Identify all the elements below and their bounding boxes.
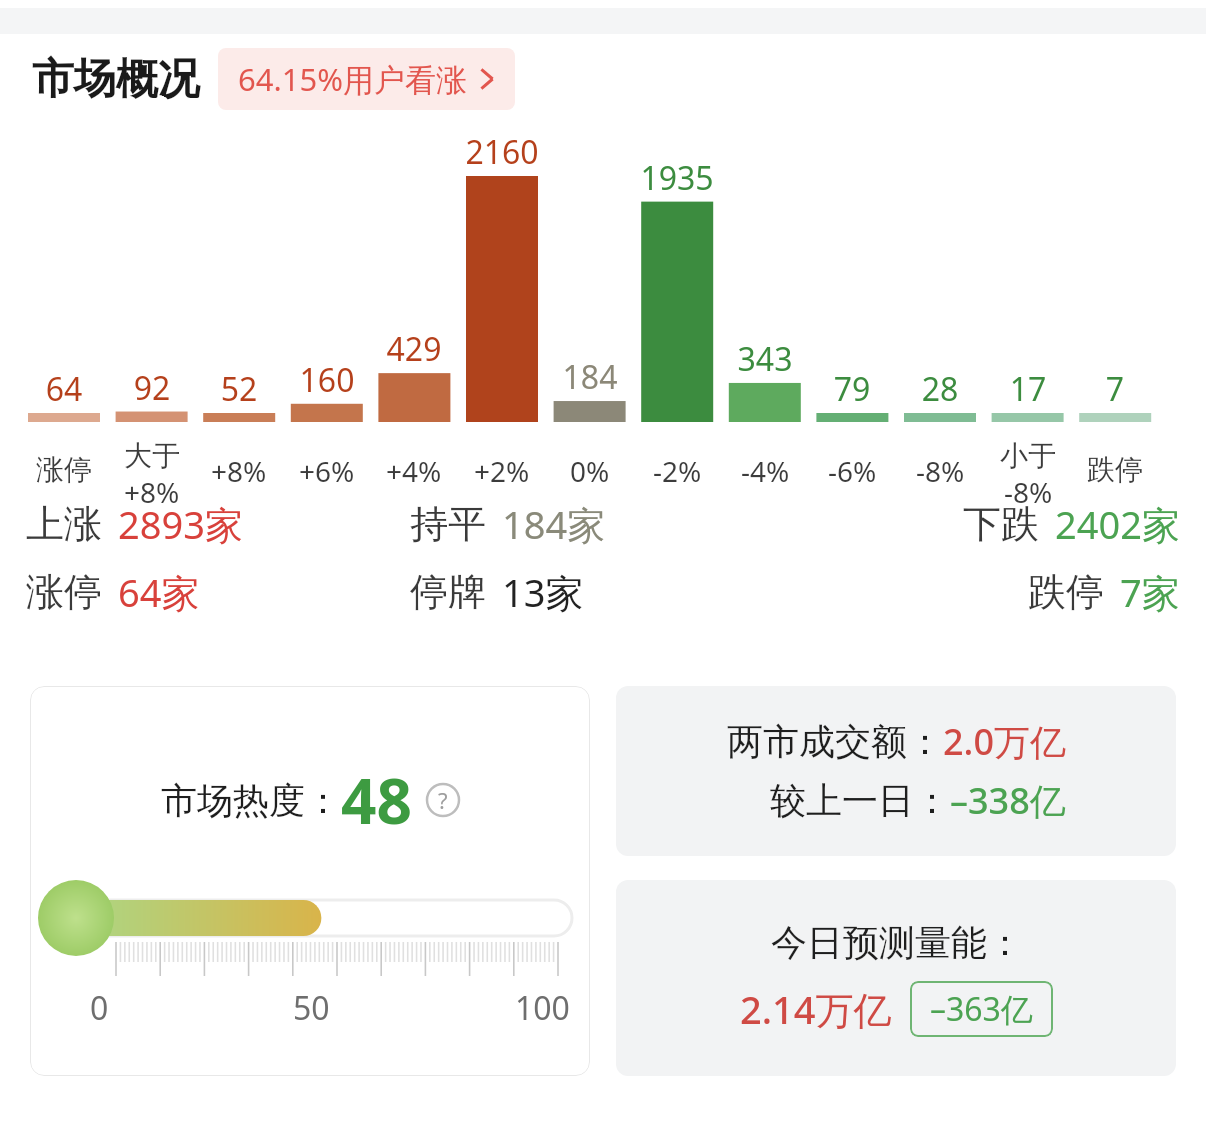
- button[interactable]: 帮助: [426, 783, 460, 817]
- staticText: 跌停: [1028, 568, 1104, 616]
- staticText: +8%: [124, 473, 180, 511]
- staticText: 50: [293, 986, 330, 1030]
- staticText: 涨停: [26, 568, 102, 616]
- staticText: 小于: [1000, 438, 1056, 473]
- staticText: +4%: [386, 452, 442, 490]
- staticText: 市场热度：: [161, 778, 341, 823]
- staticText: +8%: [211, 452, 267, 490]
- staticText: 持平: [410, 500, 486, 548]
- staticText: 2893家: [118, 498, 243, 550]
- button[interactable]: 市场热度：: [30, 686, 590, 1076]
- staticText: ?: [438, 785, 448, 815]
- staticText: 184: [530, 355, 650, 399]
- staticText: -2%: [653, 452, 702, 490]
- staticText: 大于: [124, 438, 180, 473]
- staticText: 7家: [1120, 566, 1180, 618]
- staticText: 17: [968, 367, 1088, 411]
- staticText: 下跌: [963, 500, 1039, 548]
- staticText: 64.15%用户看涨: [238, 58, 467, 100]
- staticText: 429: [354, 327, 474, 371]
- staticText: 2160: [442, 130, 562, 174]
- staticText: 184家: [502, 498, 606, 550]
- staticText: -8%: [916, 452, 965, 490]
- staticText: 52: [179, 367, 299, 411]
- staticText: 1935: [617, 156, 737, 200]
- staticText: 2.0万亿: [943, 717, 1066, 766]
- staticText: 100: [515, 986, 570, 1030]
- staticText: -6%: [828, 452, 877, 490]
- staticText: 0: [90, 986, 109, 1030]
- staticText: 市场概况: [32, 53, 200, 106]
- staticText: –338亿: [950, 776, 1066, 825]
- staticText: 64: [4, 367, 124, 411]
- staticText: -4%: [741, 452, 790, 490]
- staticText: 2402家: [1055, 498, 1180, 550]
- button[interactable]: 两市成交额：: [616, 686, 1176, 856]
- button[interactable]: 今日预测量能：: [616, 880, 1176, 1076]
- staticText: 92: [92, 366, 212, 410]
- staticText: 160: [267, 358, 387, 402]
- staticText: 64家: [118, 566, 200, 618]
- staticText: 0%: [570, 452, 610, 490]
- staticText: 79: [792, 367, 912, 411]
- staticText: –363亿: [930, 987, 1033, 1031]
- staticText: 今日预测量能：: [771, 920, 1023, 965]
- staticText: 涨停: [36, 452, 92, 487]
- staticText: +6%: [299, 452, 355, 490]
- staticText: +2%: [474, 452, 530, 490]
- staticText: 上涨: [26, 500, 102, 548]
- staticText: -8%: [1004, 473, 1053, 511]
- staticText: 跌停: [1087, 452, 1143, 487]
- staticText: 28: [880, 367, 1000, 411]
- staticText: 48: [341, 758, 412, 842]
- staticText: 较上一日：: [770, 778, 950, 823]
- staticText: 停牌: [410, 568, 486, 616]
- staticText: 7: [1055, 367, 1175, 411]
- staticText: 343: [705, 337, 825, 381]
- button[interactable]: 64.15%用户看涨: [218, 48, 515, 110]
- staticText: 13家: [502, 566, 584, 618]
- staticText: 2.14万亿: [740, 983, 892, 1035]
- staticText: 两市成交额：: [727, 719, 943, 764]
